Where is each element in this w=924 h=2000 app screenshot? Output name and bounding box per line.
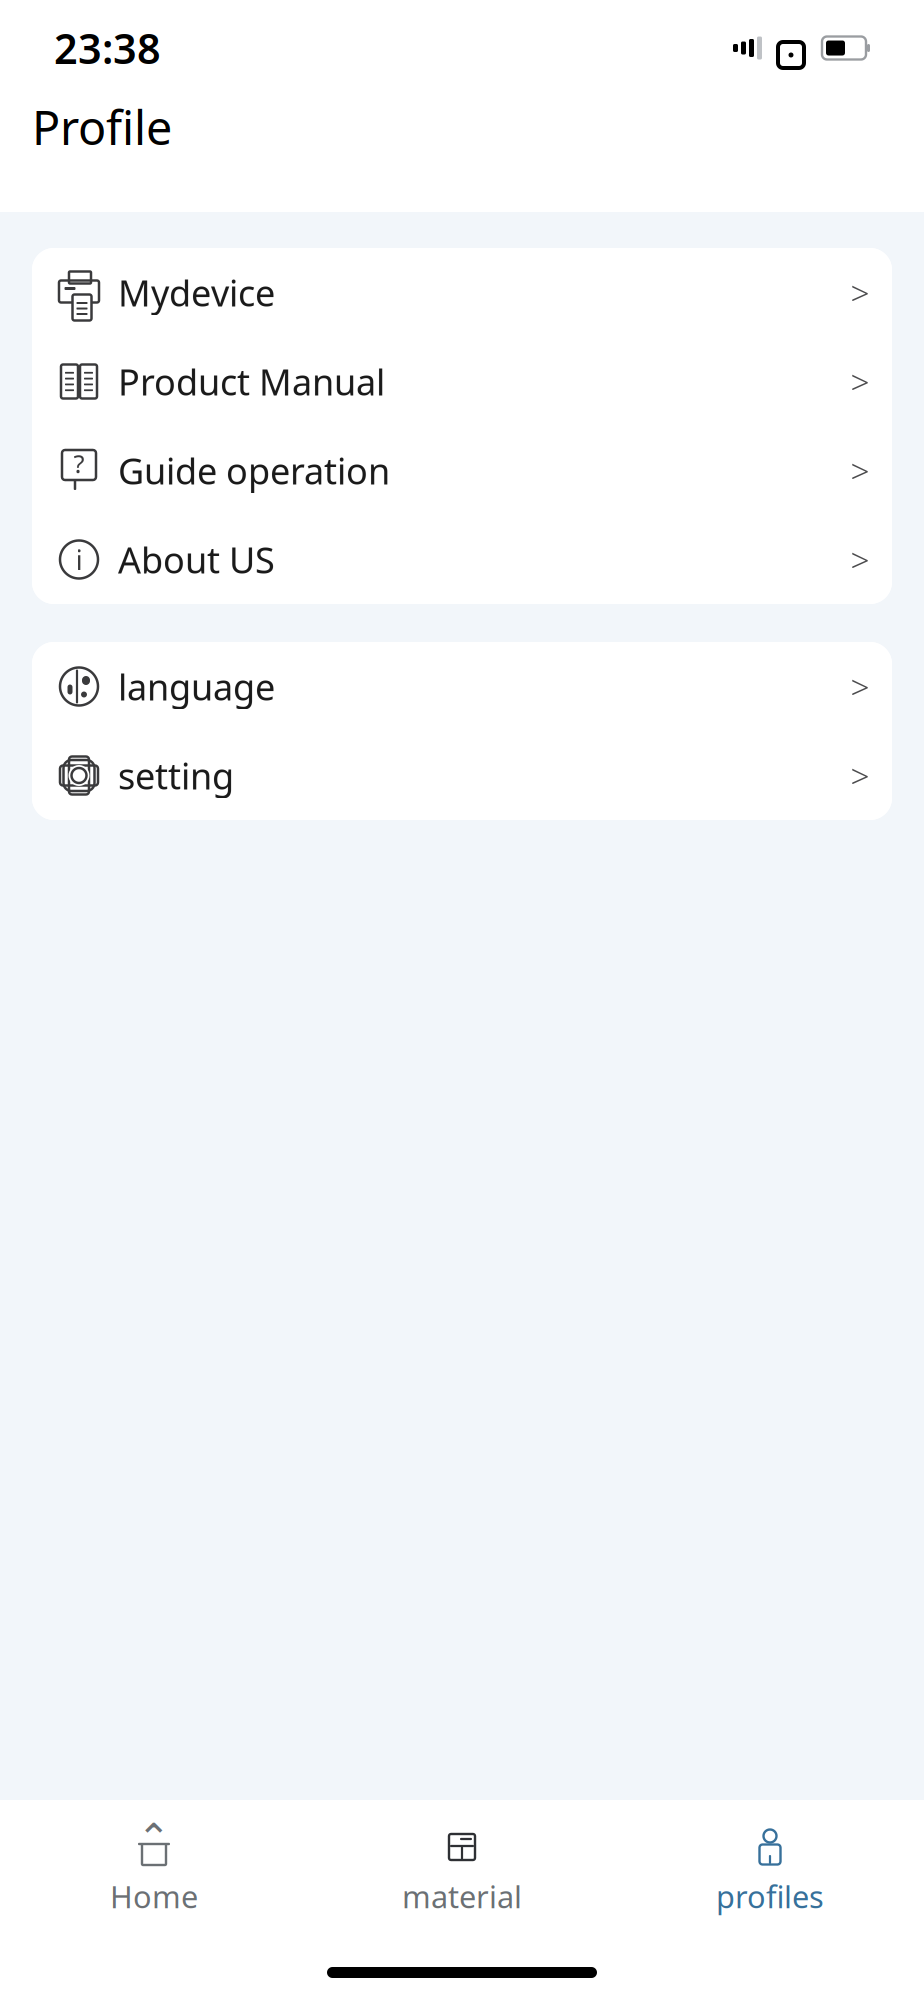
- staticText: Home: [110, 1876, 198, 1917]
- button[interactable]: Product Manual: [32, 337, 892, 426]
- button[interactable]: material: [308, 1814, 616, 1927]
- button[interactable]: ⌃: [0, 1814, 308, 1927]
- staticText: 23:38: [54, 21, 161, 75]
- staticText: ?: [73, 447, 84, 480]
- staticText: i: [75, 541, 82, 578]
- staticText: Product Manual: [118, 358, 385, 405]
- button[interactable]: setting: [32, 731, 892, 820]
- button[interactable]: Mydevice: [32, 248, 892, 337]
- staticText: profiles: [716, 1876, 824, 1917]
- staticText: >: [850, 753, 869, 798]
- staticText: setting: [118, 752, 234, 799]
- staticText: ⌃: [137, 1815, 171, 1861]
- button[interactable]: ?: [32, 426, 892, 515]
- staticText: >: [850, 359, 869, 404]
- staticText: language: [118, 663, 275, 710]
- staticText: >: [850, 270, 869, 315]
- staticText: About US: [118, 536, 275, 583]
- staticText: >: [850, 664, 869, 709]
- button[interactable]: i: [32, 515, 892, 604]
- staticText: material: [402, 1876, 522, 1917]
- button[interactable]: language: [32, 642, 892, 731]
- staticText: Profile: [32, 96, 172, 158]
- staticText: >: [850, 448, 869, 493]
- staticText: Mydevice: [118, 269, 275, 316]
- button[interactable]: profiles: [616, 1814, 924, 1927]
- staticText: >: [850, 537, 869, 582]
- staticText: Guide operation: [118, 447, 390, 494]
